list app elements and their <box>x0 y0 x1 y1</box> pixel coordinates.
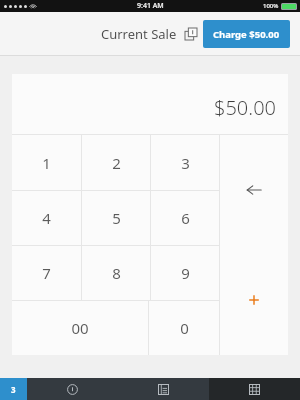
button[interactable]: 9 <box>151 246 219 300</box>
staticText: 100% <box>263 2 279 10</box>
button[interactable]: 7 <box>12 246 81 300</box>
staticText: 9 <box>181 263 190 283</box>
button[interactable]: 8 <box>82 246 150 300</box>
staticText: 8 <box>112 263 121 283</box>
staticText: 2 <box>112 153 121 173</box>
staticText: 5 <box>112 208 121 228</box>
button[interactable]: 4 <box>12 191 81 245</box>
button[interactable]: 3 <box>151 135 219 190</box>
staticText: 0 <box>180 318 189 338</box>
button[interactable]: 5 <box>82 191 150 245</box>
button[interactable]: 2 <box>82 135 150 190</box>
button[interactable]: Charge $50.00 <box>203 20 290 48</box>
staticText: 4 <box>42 208 51 228</box>
button[interactable]: 3 <box>0 378 27 400</box>
button[interactable]: 0 <box>149 301 219 355</box>
button[interactable]: Add item <box>220 245 288 355</box>
staticText: 6 <box>181 208 190 228</box>
staticText: Current Sale <box>101 25 177 43</box>
staticText: 3 <box>11 384 16 395</box>
button[interactable]: 00 <box>12 301 148 355</box>
staticText: $50.00 <box>214 94 276 121</box>
staticText: 00 <box>71 318 89 338</box>
button[interactable]: 1 <box>12 135 81 190</box>
button[interactable]: Info <box>27 378 118 400</box>
staticText: 1 <box>42 153 51 173</box>
button[interactable]: Keypad <box>209 378 300 400</box>
button[interactable]: 6 <box>151 191 219 245</box>
staticText: Charge $50.00 <box>213 28 280 41</box>
staticText: 9:41 AM <box>137 1 164 11</box>
staticText: 7 <box>42 263 51 283</box>
button[interactable]: Backspace <box>220 135 288 245</box>
staticText: 3 <box>181 153 190 173</box>
button[interactable]: Transactions <box>118 378 209 400</box>
button[interactable]: Sale items <box>182 25 200 43</box>
